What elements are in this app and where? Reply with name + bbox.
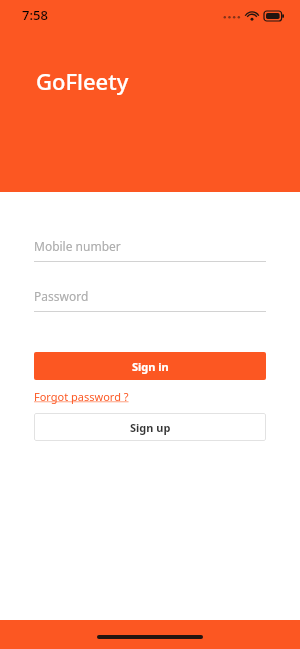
button[interactable]: Sign up xyxy=(34,413,266,441)
button[interactable]: Mobile number xyxy=(34,238,266,262)
button[interactable]: Password xyxy=(34,288,266,312)
staticText: Forgot password ? xyxy=(34,389,129,404)
staticText: Sign up xyxy=(130,420,171,435)
button[interactable]: Forgot password ? xyxy=(34,389,129,404)
staticText: Sign in xyxy=(132,359,169,374)
staticText: GoFleety xyxy=(36,66,129,96)
staticText: Mobile number xyxy=(34,238,121,254)
staticText: Password xyxy=(34,288,89,304)
staticText: 7:58 xyxy=(22,6,48,24)
button[interactable]: Sign in xyxy=(34,352,266,380)
